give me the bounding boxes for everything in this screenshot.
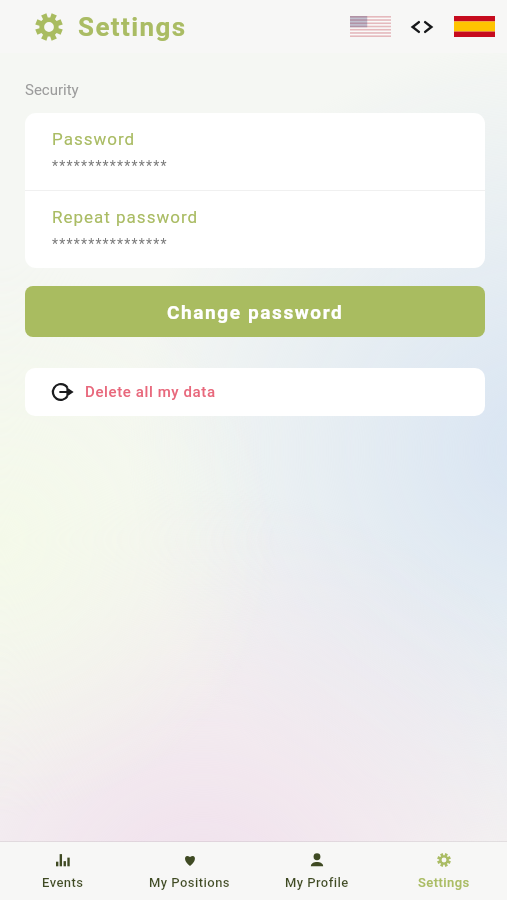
button[interactable]: Repeat password bbox=[25, 191, 485, 268]
button[interactable]: Settings bbox=[380, 842, 507, 900]
staticText: Password bbox=[52, 129, 136, 149]
staticText: Delete all my data bbox=[85, 383, 216, 401]
staticText: Events bbox=[42, 875, 84, 890]
staticText: Repeat password bbox=[52, 207, 199, 227]
button[interactable]: Spanish bbox=[454, 16, 495, 37]
staticText: Settings bbox=[78, 12, 187, 42]
button[interactable]: Password bbox=[25, 113, 485, 190]
staticText: **************** bbox=[52, 158, 168, 174]
staticText: Security bbox=[25, 81, 79, 99]
button[interactable]: Change password bbox=[25, 286, 485, 337]
button[interactable]: Delete all my data bbox=[25, 368, 485, 416]
staticText: My Profile bbox=[285, 875, 349, 890]
button[interactable]: My Positions bbox=[126, 842, 253, 900]
staticText: My Positions bbox=[149, 875, 231, 890]
button[interactable]: Events bbox=[0, 842, 126, 900]
button[interactable]: Switch language bbox=[409, 18, 435, 36]
button[interactable]: English bbox=[350, 16, 391, 37]
staticText: **************** bbox=[52, 236, 168, 252]
staticText: Settings bbox=[418, 875, 470, 890]
staticText: Change password bbox=[167, 301, 344, 323]
button[interactable]: My Profile bbox=[253, 842, 380, 900]
